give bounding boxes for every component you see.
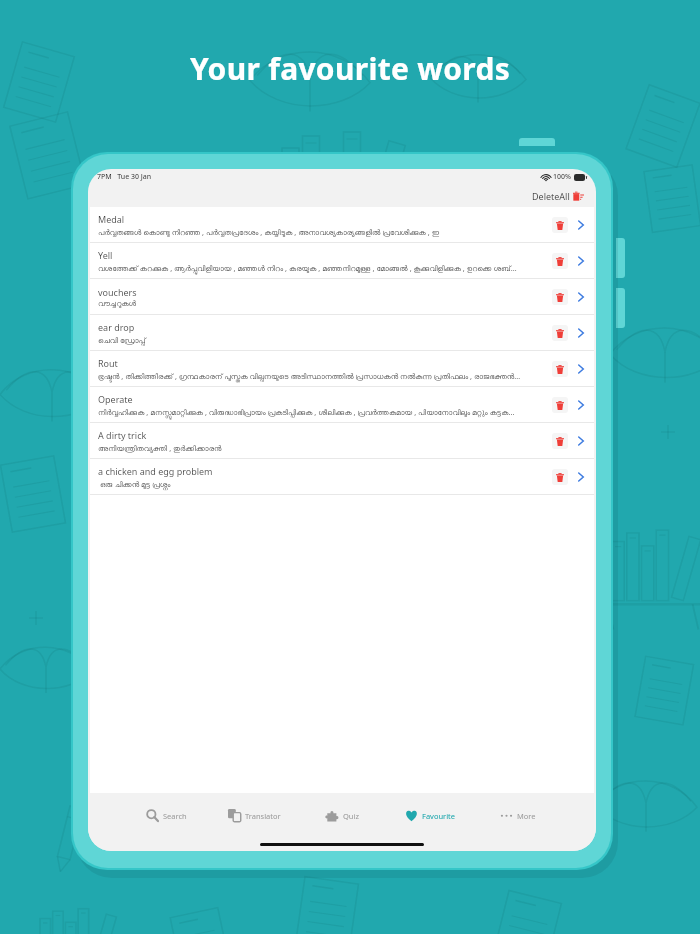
button[interactable]: Translator — [210, 793, 298, 838]
button[interactable]: DeleteAll — [529, 188, 587, 204]
staticText: ചെവി ഡ്രോപ്പ് — [98, 335, 146, 345]
button[interactable]: a chicken and egg problem — [90, 459, 594, 495]
staticText: Search — [163, 811, 187, 821]
staticText: Rout — [98, 357, 118, 369]
staticText: അനിയന്ത്രിതവ്യക്തി , തുർക്കിക്കാരൻ — [98, 443, 222, 453]
staticText: Quiz — [343, 811, 359, 821]
button[interactable]: More — [474, 793, 562, 838]
button[interactable]: Delete Medal — [552, 217, 568, 233]
staticText: More — [517, 811, 536, 821]
button[interactable]: Open vouchers — [574, 290, 588, 304]
button[interactable]: Open Yell — [574, 254, 588, 268]
staticText: നിർവ്വഹിക്കുക , മനസ്സുമാറ്റിക്കുക , വിരു… — [98, 407, 515, 417]
staticText: 100% — [553, 172, 571, 182]
staticText: ഒരു ചിക്കൻ മുട്ട പ്രശ്നം — [98, 479, 171, 489]
button[interactable]: Open ear drop — [574, 326, 588, 340]
button[interactable]: Rout — [90, 351, 594, 387]
button[interactable]: Delete Operate — [552, 397, 568, 413]
button[interactable]: Medal — [90, 207, 594, 243]
staticText: ear drop — [98, 321, 135, 333]
staticText: Translator — [245, 811, 281, 821]
staticText: Favourite — [422, 811, 456, 821]
staticText: A dirty trick — [98, 429, 147, 441]
button[interactable]: Delete Yell — [552, 253, 568, 269]
staticText: Medal — [98, 213, 125, 225]
button[interactable]: Open A dirty trick — [574, 434, 588, 448]
button[interactable]: A dirty trick — [90, 423, 594, 459]
staticText: a chicken and egg problem — [98, 465, 213, 477]
staticText: 7PM Tue 30 Jan — [97, 172, 152, 182]
button[interactable]: Open Operate — [574, 398, 588, 412]
staticText: വൗച്ചറുകൾ — [98, 300, 137, 308]
staticText: vouchers — [98, 286, 137, 298]
button[interactable]: Open Rout — [574, 362, 588, 376]
button[interactable]: Delete Rout — [552, 361, 568, 377]
button[interactable]: Yell — [90, 243, 594, 279]
staticText: ഭ്രഷ്ടൻ , തിക്കിത്തിരക്ക് , ഗ്രന്ഥകാരന് … — [98, 371, 521, 381]
button[interactable]: Operate — [90, 387, 594, 423]
staticText: Yell — [98, 249, 113, 261]
staticText: Operate — [98, 393, 133, 405]
button[interactable]: Delete vouchers — [552, 289, 568, 305]
staticText: വശത്തേക്ക് കറക്കുക , ആർപ്പുവിളിയായ , മഞ്… — [98, 263, 517, 273]
button[interactable]: Delete ear drop — [552, 325, 568, 341]
button[interactable]: ear drop — [90, 315, 594, 351]
staticText: പർവ്വതങ്ങൾ കൊണ്ടു നിറഞ്ഞ , പർവ്വതപ്രദേശം… — [98, 227, 440, 237]
button[interactable]: vouchers — [90, 279, 594, 315]
button[interactable]: Open a chicken and egg problem — [574, 470, 588, 484]
button[interactable]: Delete A dirty trick — [552, 433, 568, 449]
button[interactable]: Delete a chicken and egg problem — [552, 469, 568, 485]
button[interactable]: Open Medal — [574, 218, 588, 232]
button[interactable]: Quiz — [298, 793, 386, 838]
staticText: Your favourite words — [190, 48, 511, 89]
staticText: DeleteAll — [532, 190, 570, 202]
button[interactable]: Favourite — [386, 793, 474, 838]
button[interactable]: Search — [122, 793, 210, 838]
